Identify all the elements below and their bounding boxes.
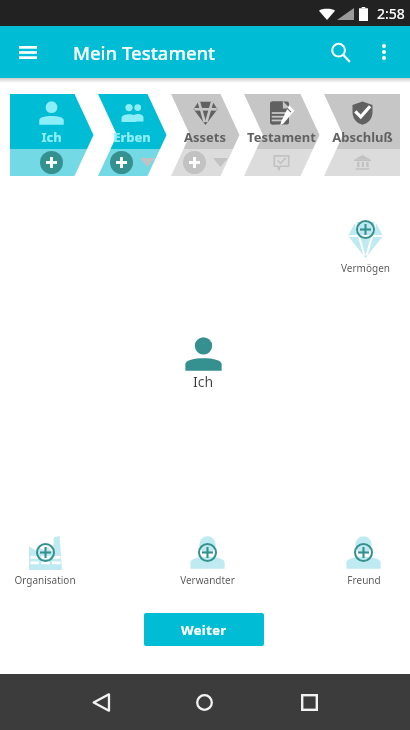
button[interactable]: Vermögen [341, 222, 390, 275]
button[interactable]: Home [182, 680, 226, 724]
button[interactable]: Ich [10, 94, 98, 176]
button[interactable]: More options [362, 30, 406, 74]
staticText: Erben [113, 128, 151, 146]
button[interactable]: Abschluß [324, 94, 400, 176]
button[interactable]: Search [318, 30, 362, 74]
staticText: Verwandter [180, 573, 235, 587]
staticText: Ich [41, 128, 62, 146]
button[interactable]: Erben [98, 94, 171, 176]
staticText: Freund [347, 573, 381, 587]
button[interactable]: Weiter [144, 613, 264, 646]
staticText: Vermögen [341, 261, 390, 275]
staticText: Mein Testament [73, 40, 216, 65]
staticText: 2:58 [377, 4, 405, 23]
button[interactable]: Open navigation menu [9, 33, 47, 71]
button[interactable]: Testament [244, 94, 324, 176]
staticText: Abschluß [332, 128, 393, 146]
staticText: Testament [247, 128, 316, 146]
staticText: Weiter [181, 621, 227, 639]
button[interactable]: Verwandter [180, 536, 235, 587]
button[interactable]: Freund [346, 536, 381, 587]
staticText: Ich [193, 372, 214, 391]
button[interactable]: Assets [171, 94, 244, 176]
staticText: Organisation [14, 573, 76, 587]
button[interactable]: Recent apps [287, 680, 331, 724]
button[interactable]: Organisation [14, 536, 76, 587]
button[interactable]: Ich [185, 337, 222, 391]
button[interactable]: Back [79, 680, 123, 724]
staticText: Assets [184, 128, 226, 146]
